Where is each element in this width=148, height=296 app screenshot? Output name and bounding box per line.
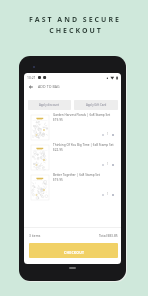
staticText: 1 (107, 162, 109, 166)
staticText: Better Together | 6x8 Stamp Set (53, 173, 100, 177)
button[interactable]: Apply discount (28, 100, 71, 110)
staticText: FAST AND SECURE (29, 15, 121, 25)
staticText: $22.95 (53, 148, 63, 152)
staticText: Apply Gift Card (86, 103, 107, 107)
staticText: Total $83.85 (99, 233, 118, 237)
staticText: $19.95 (53, 118, 63, 122)
button[interactable]: Better Together | 6x8 Stamp Set (24, 173, 121, 203)
staticText: 1 (107, 192, 109, 196)
staticText: Apply discount (39, 103, 60, 107)
staticText: Garden Harvest Florals | 6x8 Stamp Set (53, 113, 111, 117)
button[interactable]: Increase quantity (110, 192, 115, 197)
staticText: CHECKOUT (49, 26, 103, 36)
button[interactable]: Back (27, 83, 34, 90)
button[interactable]: Increase quantity (110, 132, 115, 137)
staticText: 1 (107, 132, 109, 136)
staticText: $19.95 (53, 178, 63, 182)
button[interactable]: Increase quantity (110, 162, 115, 167)
staticText: 10:21 (27, 75, 36, 80)
staticText: CHECKOUT (64, 250, 85, 255)
button[interactable]: Decrease quantity (100, 192, 105, 197)
staticText: 3 items (29, 233, 41, 237)
staticText: Thinking Of You Big Time | 6x8 Stamp Set (53, 143, 114, 147)
button[interactable]: Apply Gift Card (74, 100, 118, 110)
button[interactable]: Decrease quantity (100, 162, 105, 167)
button[interactable]: CHECKOUT (29, 243, 118, 258)
staticText: ADD TO BAG (38, 84, 60, 89)
button[interactable]: Garden Harvest Florals | 6x8 Stamp Set (24, 113, 121, 143)
button[interactable]: Decrease quantity (100, 132, 105, 137)
button[interactable]: Thinking Of You Big Time | 6x8 Stamp Set (24, 143, 121, 173)
